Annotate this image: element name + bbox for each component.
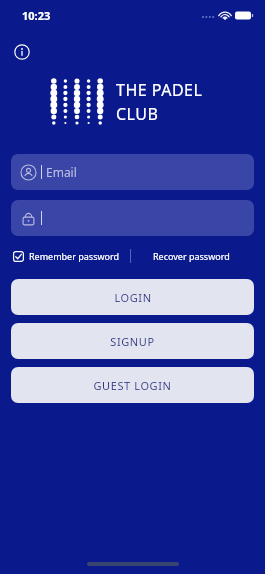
button[interactable]: Remember password bbox=[13, 249, 120, 263]
staticText: 10:23 bbox=[22, 8, 51, 23]
staticText: CLUB bbox=[116, 103, 159, 125]
staticText: THE PADEL bbox=[116, 79, 203, 101]
staticText: GUEST LOGIN bbox=[93, 378, 172, 393]
button[interactable]: Recover password bbox=[149, 248, 234, 264]
staticText: SIGNUP bbox=[110, 334, 155, 349]
button[interactable]: Email bbox=[11, 154, 254, 190]
button[interactable]: LOGIN bbox=[11, 279, 254, 315]
button[interactable]: Information bbox=[10, 40, 34, 64]
staticText: Remember password bbox=[29, 250, 120, 262]
button[interactable]: GUEST LOGIN bbox=[11, 367, 254, 403]
staticText: Recover password bbox=[153, 250, 230, 262]
staticText: Email bbox=[46, 164, 77, 180]
staticText: LOGIN bbox=[114, 290, 152, 305]
button[interactable]: SIGNUP bbox=[11, 323, 254, 359]
button[interactable]: Password bbox=[11, 200, 254, 236]
